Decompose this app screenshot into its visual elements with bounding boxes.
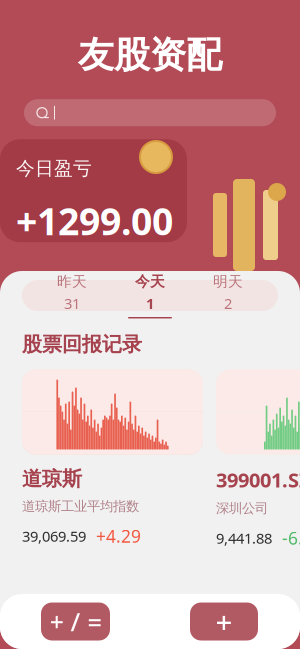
staticText: 今日盈亏	[16, 157, 92, 180]
staticText: +	[215, 602, 232, 641]
staticText: 2	[224, 293, 232, 313]
button[interactable]: 昨天	[33, 272, 111, 318]
button[interactable]: 399001.SZ	[216, 370, 300, 550]
staticText: 9,441.88	[216, 528, 272, 548]
button[interactable]: Add	[190, 602, 258, 640]
staticText: + / =	[49, 605, 101, 638]
staticText: 39,069.59	[22, 526, 86, 546]
staticText: 股票回报记录	[22, 332, 142, 357]
staticText: 今天	[135, 272, 165, 290]
staticText: 399001.SZ	[216, 467, 300, 493]
staticText: 道琼斯工业平均指数	[22, 498, 139, 514]
button[interactable]: 明天	[189, 272, 267, 318]
staticText: 31	[64, 293, 80, 313]
staticText: +4.29	[96, 524, 141, 547]
button[interactable]: 今天	[111, 272, 189, 318]
staticText: 深圳公司	[216, 500, 268, 516]
staticText: 友股资配	[78, 33, 222, 77]
staticText: 明天	[213, 272, 243, 290]
staticText: -6.15	[282, 526, 300, 549]
staticText: 道琼斯	[22, 467, 82, 491]
button[interactable]: 道琼斯	[22, 370, 203, 548]
button[interactable]: Calculate	[41, 602, 110, 640]
staticText: 昨天	[57, 272, 87, 290]
staticText: +1299.00	[16, 196, 173, 245]
staticText: 1	[146, 293, 154, 313]
